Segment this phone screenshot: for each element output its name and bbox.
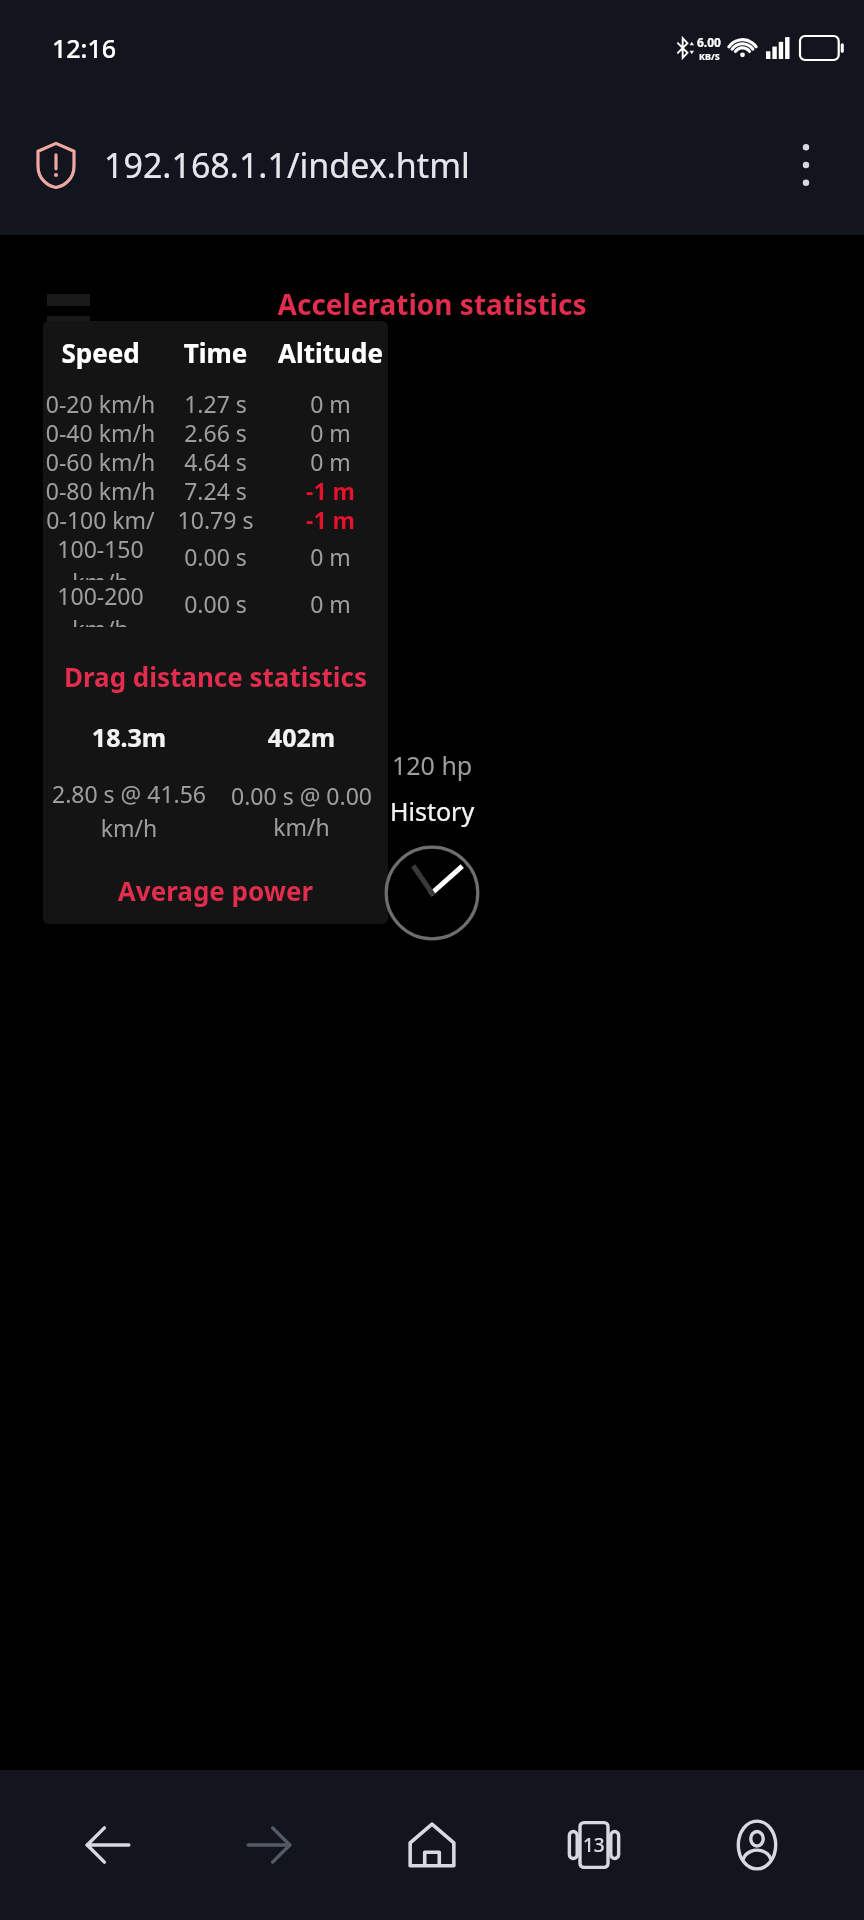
staticText: 0-60 km/h	[43, 446, 158, 475]
staticText: 0.00 s	[158, 588, 273, 619]
staticText: Average power	[43, 873, 388, 908]
staticText: 2.80 s @ 41.56 km/h	[43, 778, 215, 843]
button[interactable]: Back	[52, 1790, 162, 1900]
staticText: 0.00 s	[158, 541, 273, 572]
staticText: Acceleration statistics	[0, 285, 864, 323]
button[interactable]: History	[390, 794, 475, 828]
staticText: 120 hp	[392, 748, 473, 782]
staticText: 2.66 s	[158, 417, 273, 446]
staticText: 0 m	[273, 446, 388, 475]
button[interactable]: More options	[770, 129, 842, 201]
staticText: 12:16	[52, 31, 117, 65]
button[interactable]: Forward	[215, 1790, 325, 1900]
staticText: -1 m	[273, 475, 388, 504]
staticText: 100-150 km/h	[43, 533, 158, 580]
staticText: 0-20 km/h	[43, 388, 158, 417]
staticText: 100-200 km/h	[43, 580, 158, 627]
staticText: Drag distance statistics	[43, 659, 388, 694]
staticText: 0.00 s @ 0.00 km/h	[215, 780, 388, 842]
staticText: 13	[583, 1832, 605, 1858]
staticText: Time	[158, 335, 273, 370]
staticText: Altitude	[273, 335, 388, 370]
staticText: 7.24 s	[158, 475, 273, 504]
staticText: 0-100 km/h	[43, 504, 158, 533]
staticText: 0 m	[273, 588, 388, 619]
staticText: 10.79 s	[158, 504, 273, 533]
staticText: 4.64 s	[158, 446, 273, 475]
staticText: 18.3m	[43, 720, 215, 754]
staticText: 0 m	[273, 417, 388, 446]
button[interactable]: Profile	[702, 1790, 812, 1900]
staticText: 402m	[215, 720, 388, 754]
staticText: KB/S	[699, 50, 720, 62]
staticText: 0-80 km/h	[43, 475, 158, 504]
staticText: 6.00	[697, 34, 721, 50]
staticText: Speed	[43, 335, 158, 370]
staticText: History	[390, 794, 475, 828]
staticText: 1.27 s	[158, 388, 273, 417]
staticText: -1 m	[273, 504, 388, 533]
button[interactable]: Home	[377, 1790, 487, 1900]
staticText: 192.168.1.1/index.html	[104, 142, 470, 188]
staticText: 0 m	[273, 388, 388, 417]
staticText: 0-40 km/h	[43, 417, 158, 446]
staticText: 0 m	[273, 541, 388, 572]
button[interactable]: Tabs, 13 open	[539, 1790, 649, 1900]
